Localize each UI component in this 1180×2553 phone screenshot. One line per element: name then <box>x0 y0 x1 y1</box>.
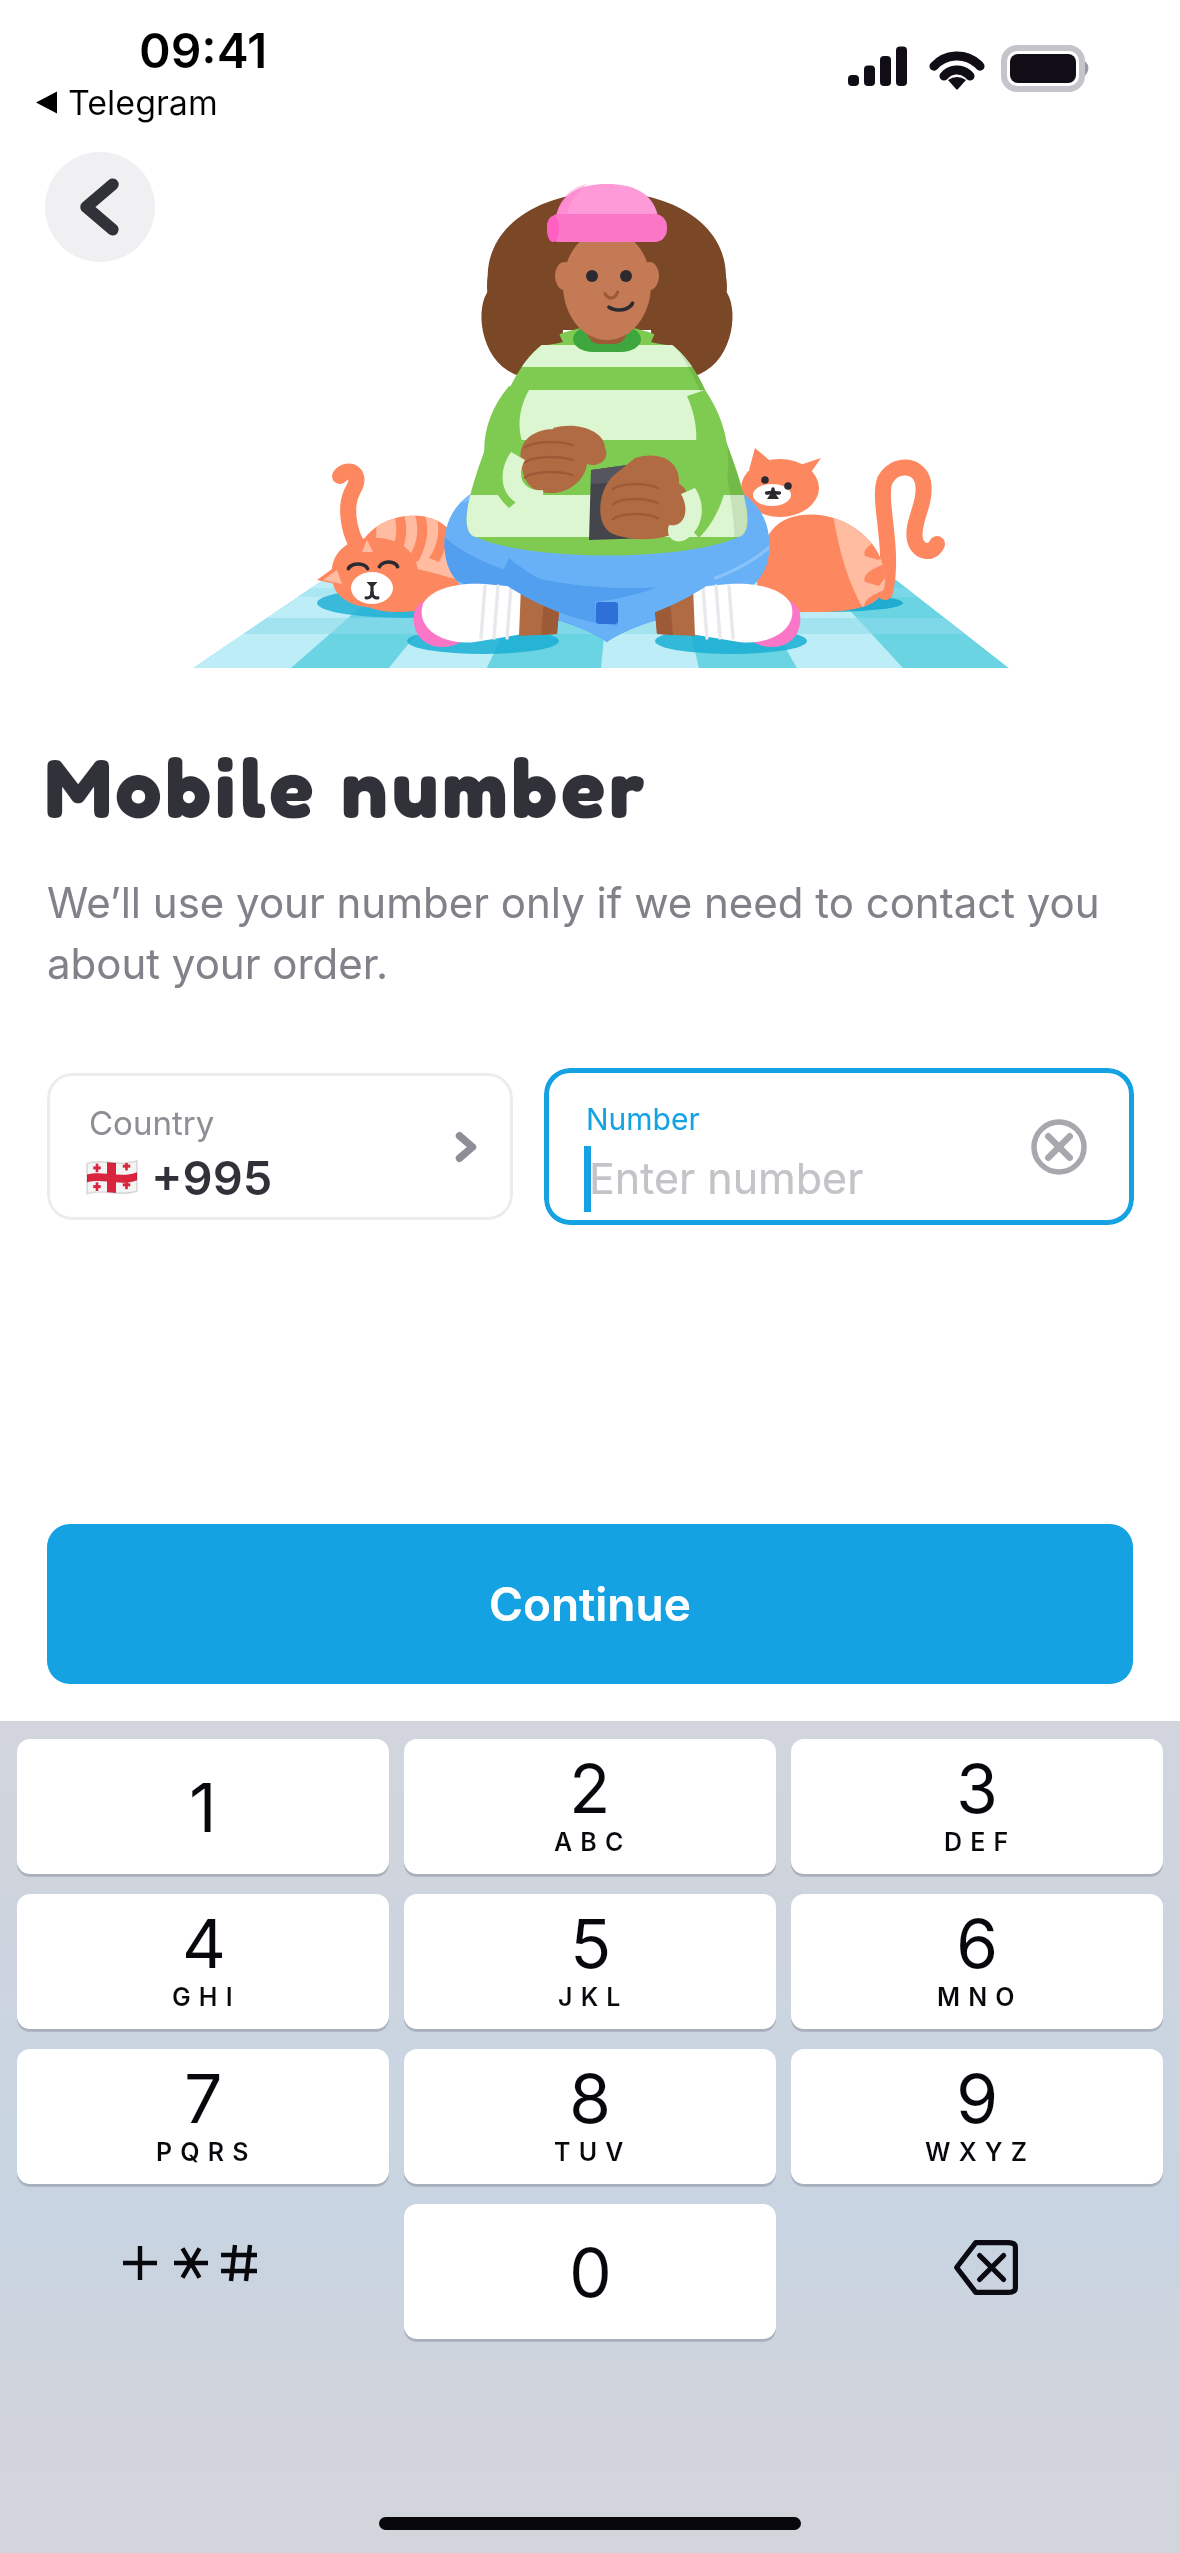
button[interactable]: 2 <box>404 1739 776 1874</box>
staticText: We’ll use your number only if we need to… <box>47 877 1122 989</box>
staticText: 2 <box>569 1747 611 1829</box>
staticText: 7 <box>184 2057 223 2139</box>
staticText: +995 <box>151 1149 273 1206</box>
button[interactable]: 9 <box>791 2049 1163 2184</box>
staticText: A B C <box>554 1827 626 1857</box>
button[interactable]: 7 <box>17 2049 389 2184</box>
staticText: 8 <box>569 2057 612 2139</box>
staticText: W X Y Z <box>925 2137 1030 2167</box>
staticText: G H I <box>172 1982 235 2012</box>
staticText: 5 <box>570 1902 612 1984</box>
button[interactable]: Back <box>45 152 155 262</box>
button[interactable]: Continue <box>47 1524 1133 1684</box>
staticText: T U V <box>554 2137 626 2167</box>
staticText: 1 <box>189 1766 217 1848</box>
button[interactable]: 1 <box>17 1739 389 1874</box>
staticText: M N O <box>937 1982 1017 2012</box>
button[interactable]: 3 <box>791 1739 1163 1874</box>
button[interactable]: Backspace <box>791 2204 1163 2339</box>
button[interactable]: Clear number <box>1031 1119 1087 1175</box>
staticText: D E F <box>944 1827 1011 1857</box>
staticText: 6 <box>956 1902 999 1984</box>
staticText: Mobile number <box>45 737 649 836</box>
staticText: Country <box>89 1103 215 1143</box>
button[interactable]: 6 <box>791 1894 1163 2029</box>
button[interactable]: Telegram <box>36 82 218 123</box>
staticText: J K L <box>558 1982 623 2012</box>
staticText: 9 <box>956 2057 999 2139</box>
staticText: 4 <box>182 1902 226 1984</box>
staticText: Number <box>586 1101 700 1137</box>
button[interactable]: Country <box>47 1073 513 1220</box>
button[interactable]: 5 <box>404 1894 776 2029</box>
staticText: Enter number <box>589 1152 864 1204</box>
staticText: P Q R S <box>156 2137 251 2167</box>
staticText: Continue <box>489 1576 691 1632</box>
staticText: 09:41 <box>139 21 268 79</box>
button[interactable]: Number <box>544 1068 1134 1225</box>
staticText: 3 <box>956 1747 999 1829</box>
button[interactable]: 0 <box>404 2204 776 2339</box>
button[interactable]: 4 <box>17 1894 389 2029</box>
staticText: Telegram <box>68 82 218 123</box>
staticText: 0 <box>569 2231 612 2313</box>
button[interactable]: 8 <box>404 2049 776 2184</box>
button[interactable]: Symbols <box>17 2204 389 2339</box>
